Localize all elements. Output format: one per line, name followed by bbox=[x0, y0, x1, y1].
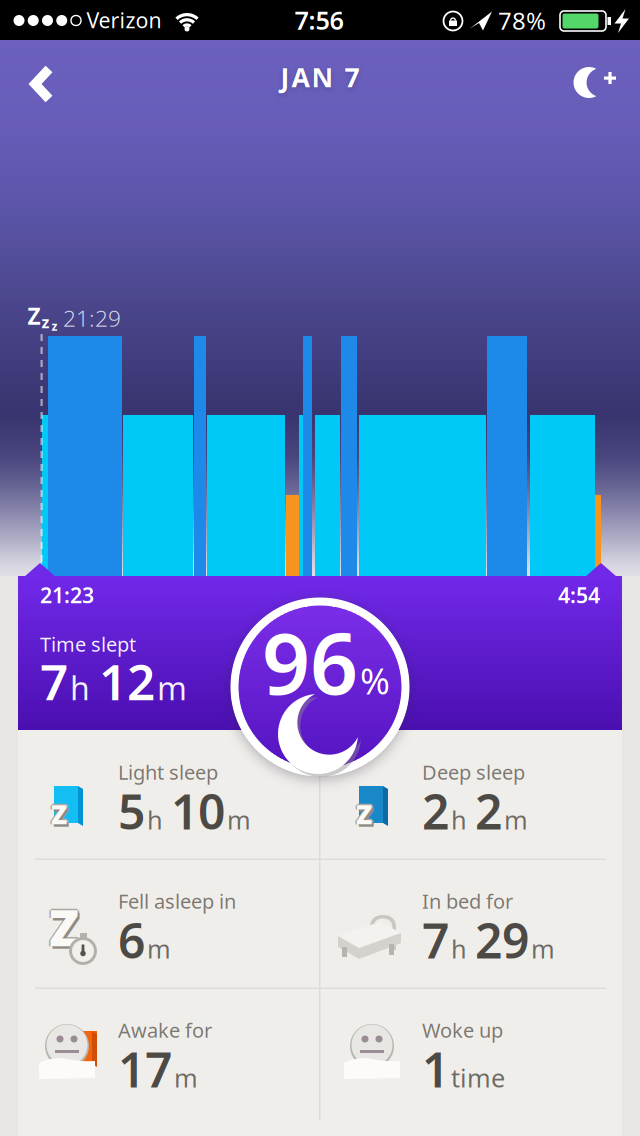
staticText: m bbox=[531, 932, 555, 966]
staticText: Z bbox=[49, 894, 79, 960]
staticText: 2 bbox=[475, 779, 502, 843]
staticText: Woke up bbox=[422, 1017, 503, 1043]
button[interactable]: Back bbox=[0, 0, 80, 86]
staticText: m bbox=[227, 803, 251, 837]
staticText: 78% bbox=[498, 5, 546, 36]
staticText: z bbox=[41, 311, 49, 333]
staticText: 12 bbox=[99, 648, 155, 714]
staticText: 6 bbox=[118, 908, 145, 972]
staticText: 7 bbox=[40, 648, 68, 714]
staticText: Z bbox=[356, 796, 372, 832]
staticText: z bbox=[51, 318, 57, 334]
staticText: time bbox=[451, 1061, 505, 1095]
staticText: Fell asleep in bbox=[118, 888, 236, 914]
staticText: m bbox=[504, 803, 528, 837]
staticText: Z bbox=[358, 799, 374, 834]
staticText: 1 bbox=[422, 1037, 449, 1101]
staticText: Z bbox=[51, 795, 67, 830]
staticText: 7 bbox=[422, 908, 449, 972]
staticText: % bbox=[360, 657, 390, 704]
staticText: 2 bbox=[422, 779, 449, 843]
button[interactable]: Add sleep bbox=[552, 40, 640, 126]
staticText: 17 bbox=[118, 1037, 172, 1101]
staticText: m bbox=[147, 932, 171, 966]
staticText: m bbox=[174, 1061, 198, 1095]
staticText: Z bbox=[354, 796, 370, 832]
staticText: 21:29 bbox=[63, 303, 121, 333]
staticText: Z bbox=[53, 799, 69, 834]
staticText: JAN 7 bbox=[280, 59, 359, 95]
staticText: 4:54 bbox=[558, 581, 600, 609]
staticText: Z bbox=[49, 893, 79, 958]
staticText: h bbox=[451, 932, 467, 966]
staticText: Z bbox=[356, 795, 372, 830]
staticText: h bbox=[451, 803, 467, 837]
staticText: Verizon bbox=[86, 6, 161, 34]
staticText: 21:23 bbox=[40, 581, 94, 609]
staticText: h bbox=[147, 803, 163, 837]
staticText: 5 bbox=[118, 779, 145, 843]
staticText: Awake for bbox=[118, 1017, 212, 1043]
staticText: Z bbox=[50, 894, 80, 960]
staticText: 10 bbox=[171, 779, 225, 843]
staticText: Z bbox=[51, 796, 67, 832]
staticText: Deep sleep bbox=[422, 759, 525, 785]
staticText: Z bbox=[27, 301, 40, 331]
staticText: Time slept bbox=[40, 631, 136, 657]
staticText: Z bbox=[47, 894, 77, 960]
staticText: 7:56 bbox=[294, 3, 343, 37]
staticText: 96 bbox=[262, 606, 358, 718]
staticText: Light sleep bbox=[118, 759, 218, 785]
staticText: Z bbox=[357, 796, 373, 832]
staticText: h bbox=[70, 666, 90, 709]
staticText: 29 bbox=[475, 908, 529, 972]
staticText: Z bbox=[51, 897, 81, 962]
staticText: Z bbox=[49, 796, 65, 832]
staticText: m bbox=[157, 666, 187, 709]
staticText: Z bbox=[52, 796, 68, 832]
staticText: In bed for bbox=[422, 888, 513, 914]
